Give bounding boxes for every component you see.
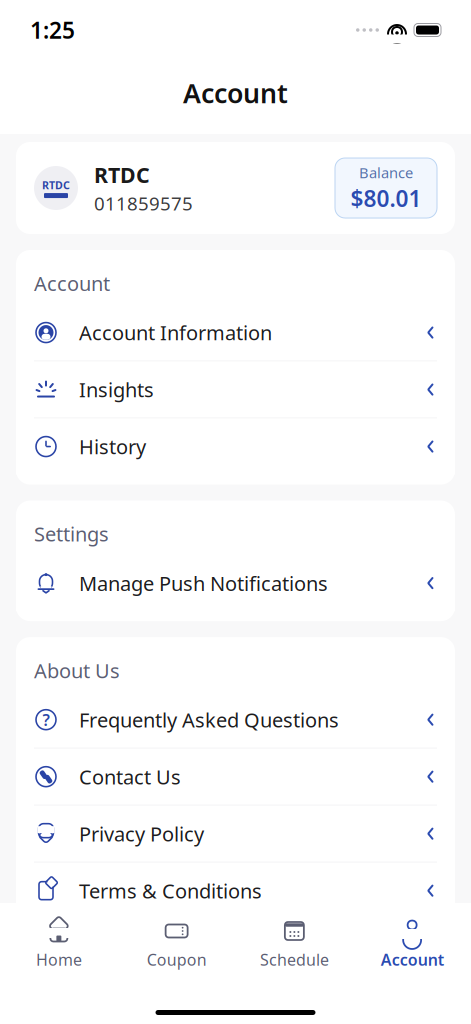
staticText: 011859575 [94,191,193,216]
staticText: Balance [359,163,413,182]
staticText: Account [34,270,110,297]
staticText: History [79,433,146,460]
button[interactable]: History [16,419,455,475]
button[interactable]: Insights [16,362,455,418]
staticText: RTDC [94,160,150,189]
staticText: Coupon [147,949,207,970]
staticText: 1:25 [30,15,75,45]
staticText: Contact Us [79,763,181,790]
button[interactable]: Licenses [16,920,455,976]
staticText: Frequently Asked Questions [79,706,339,733]
button[interactable]: Terms & Conditions [16,863,455,919]
staticText: Terms & Conditions [79,877,262,904]
staticText: Schedule [260,949,329,970]
staticText: Settings [34,521,109,547]
button[interactable]: Contact Us [16,749,455,805]
button[interactable]: Account Information [16,305,455,361]
button[interactable]: Account [353,913,471,976]
button[interactable]: Schedule [235,913,353,976]
staticText: ? [42,709,49,730]
button[interactable]: Manage Push Notifications [16,555,455,611]
button[interactable]: Privacy Policy [16,806,455,862]
staticText: Home [36,949,82,970]
button[interactable]: Coupon [118,913,236,976]
staticText: Insights [79,376,154,403]
button[interactable]: ? [16,692,455,748]
staticText: Account [183,75,288,111]
staticText: About Us [34,657,120,684]
button[interactable]: Home [0,913,118,976]
staticText: Manage Push Notifications [79,570,328,596]
staticText: Account Information [79,319,272,346]
staticText: Account [381,949,444,970]
staticText: $80.01 [350,183,421,213]
staticText: RTDC [42,178,70,192]
staticText: Privacy Policy [79,820,204,847]
staticText: Licenses [79,934,158,961]
